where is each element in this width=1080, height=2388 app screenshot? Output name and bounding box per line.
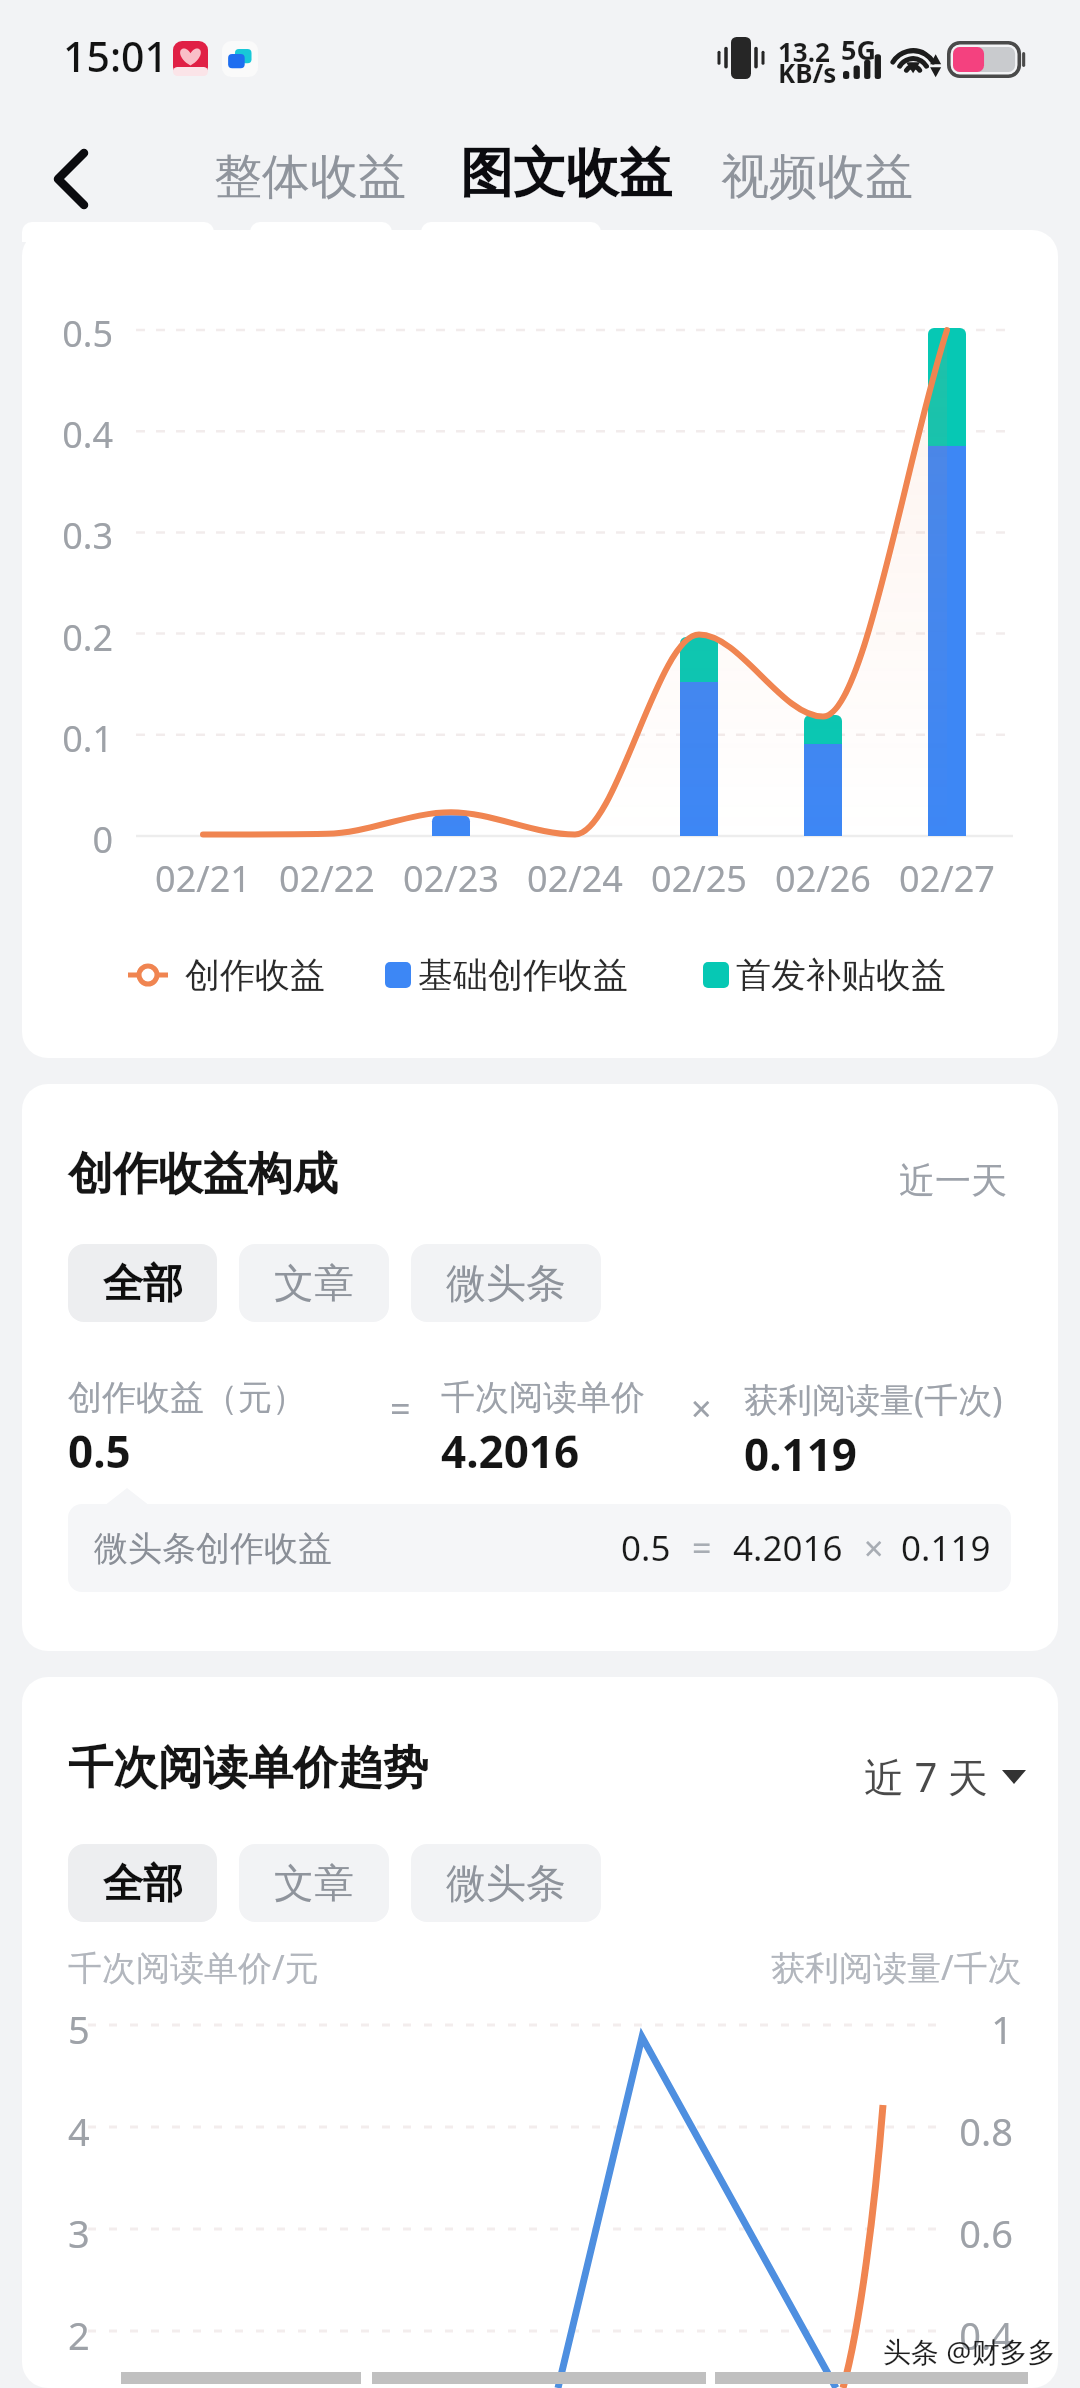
staticText: 0.4 (959, 2309, 1013, 2361)
button[interactable]: 微头条 (411, 1844, 601, 1922)
staticText: 02/21 (155, 854, 251, 903)
staticText: 5G (841, 31, 876, 68)
staticText: 0.8 (959, 2105, 1013, 2157)
staticText: 02/26 (775, 854, 871, 903)
staticText: 首发补贴收益 (736, 953, 946, 997)
staticText: 02/23 (403, 854, 499, 903)
staticText: 千次阅读单价/元 (68, 1944, 319, 1990)
button[interactable]: 首发补贴收益 (703, 952, 946, 998)
button[interactable]: 整体收益 (212, 141, 408, 213)
staticText: 5 (68, 2003, 90, 2055)
staticText: 0.2 (62, 613, 113, 662)
button[interactable]: 基础创作收益 (385, 952, 628, 998)
button[interactable]: 微头条创作收益 (68, 1504, 1011, 1592)
staticText: 视频收益 (721, 147, 913, 207)
staticText: 近一天 (899, 1158, 1007, 1203)
staticText: 微头条 (446, 1258, 566, 1308)
button[interactable]: 文章 (239, 1844, 389, 1922)
staticText: 02/22 (279, 854, 375, 903)
staticText: 0.3 (62, 511, 113, 560)
button[interactable]: 图文收益 (458, 134, 674, 213)
staticText: 0.119 (901, 1524, 991, 1572)
staticText: 图文收益 (460, 140, 672, 207)
staticText: 02/27 (899, 854, 995, 903)
button[interactable]: Select range (858, 1743, 1032, 1810)
staticText: 全部 (103, 1258, 183, 1308)
staticText: 0.5 (68, 1421, 131, 1481)
staticText: 02/24 (527, 854, 623, 903)
staticText: 千次阅读单价 (441, 1376, 645, 1419)
staticText: 文章 (274, 1258, 354, 1308)
button[interactable]: 文章 (239, 1244, 389, 1322)
staticText: 02/25 (651, 854, 747, 903)
staticText: 0.6 (959, 2207, 1013, 2259)
staticText: 15:01 (63, 28, 168, 84)
button[interactable]: 全部 (68, 1844, 217, 1922)
staticText: 创作收益（元） (68, 1376, 306, 1419)
staticText: 创作收益构成 (68, 1146, 338, 1203)
staticText: 0.119 (744, 1424, 858, 1484)
staticText: 0.5 (621, 1524, 671, 1572)
button[interactable]: Select range (893, 1152, 1013, 1209)
staticText: 0 (92, 815, 113, 864)
staticText: 头条 @财多多 (883, 2332, 1056, 2370)
staticText: 0.5 (62, 309, 113, 358)
staticText: 整体收益 (214, 147, 406, 207)
staticText: 千次阅读单价趋势 (68, 1740, 428, 1797)
button[interactable]: 视频收益 (719, 141, 915, 213)
button[interactable]: 创作收益 (128, 952, 378, 998)
staticText: = (390, 1384, 411, 1433)
staticText: 创作收益 (185, 953, 325, 997)
staticText: 文章 (274, 1858, 354, 1908)
staticText: 4 (68, 2105, 90, 2157)
staticText: 1 (991, 2003, 1013, 2055)
staticText: 获利阅读量/千次 (771, 1944, 1022, 1990)
staticText: 13.2 (778, 34, 830, 69)
staticText: 2 (68, 2309, 90, 2361)
staticText: 4.2016 (733, 1524, 843, 1572)
staticText: 微头条创作收益 (94, 1527, 332, 1570)
staticText: 3 (68, 2207, 90, 2259)
button[interactable]: 微头条 (411, 1244, 601, 1322)
staticText: KB/s (778, 55, 837, 90)
staticText: 0.1 (62, 714, 113, 763)
staticText: 4.2016 (441, 1421, 580, 1481)
button[interactable]: Back (26, 134, 116, 224)
staticText: 获利阅读量(千次) (744, 1376, 1003, 1422)
staticText: 近 7 天 (864, 1749, 988, 1804)
staticText: 基础创作收益 (418, 953, 628, 997)
staticText: 微头条 (446, 1858, 566, 1908)
staticText: 0.4 (62, 410, 113, 459)
staticText: × (691, 1384, 712, 1433)
staticText: × (864, 1525, 884, 1571)
button[interactable]: 全部 (68, 1244, 217, 1322)
staticText: = (692, 1525, 712, 1571)
staticText: 全部 (103, 1858, 183, 1908)
